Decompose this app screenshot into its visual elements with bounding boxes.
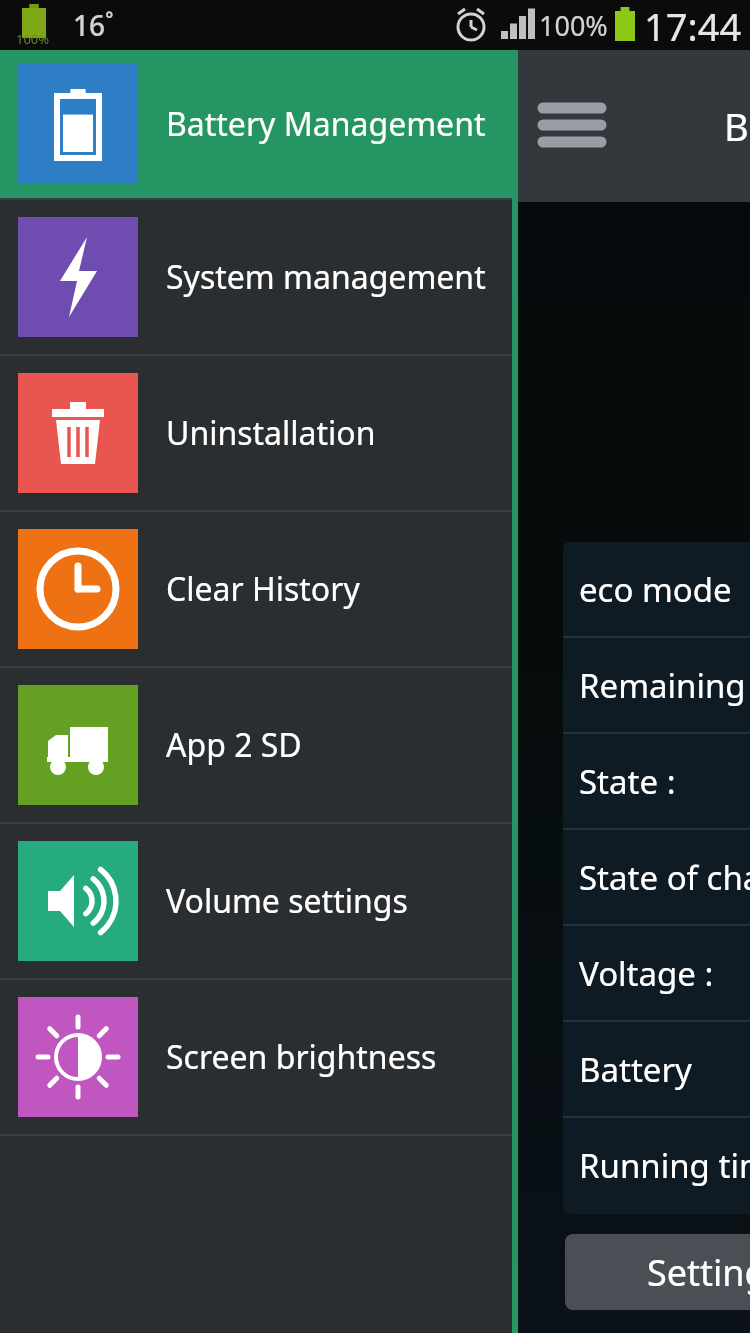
- staticText: State of charge :: [579, 855, 750, 900]
- staticText: Battery temperature :: [579, 1047, 750, 1092]
- staticText: eco mode: [579, 567, 732, 612]
- button[interactable]: Volume settings: [0, 824, 512, 978]
- button[interactable]: Clear History: [0, 512, 512, 666]
- staticText: State :: [579, 759, 676, 804]
- button[interactable]: State of charge :: [563, 830, 750, 924]
- staticText: 100%: [539, 7, 608, 44]
- staticText: Clear History: [166, 567, 360, 611]
- button[interactable]: Open navigation drawer: [536, 90, 608, 162]
- staticText: App 2 SD: [166, 723, 302, 767]
- button[interactable]: Settings: [565, 1234, 750, 1310]
- staticText: 100%: [16, 30, 50, 48]
- staticText: Running time :: [579, 1143, 750, 1188]
- button[interactable]: Voltage :: [563, 926, 750, 1020]
- button[interactable]: Uninstallation: [0, 356, 512, 510]
- button[interactable]: System management: [0, 200, 512, 354]
- button[interactable]: State :: [563, 734, 750, 828]
- button[interactable]: Screen brightness set...: [0, 980, 512, 1134]
- staticText: Uninstallation: [166, 411, 376, 455]
- staticText: Screen brightness set...: [166, 1035, 512, 1079]
- button[interactable]: Battery temperature :: [563, 1022, 750, 1116]
- staticText: Battery Management: [166, 102, 486, 146]
- button[interactable]: eco mode: [563, 542, 750, 636]
- staticText: System management: [166, 255, 486, 299]
- staticText: Settings: [647, 1248, 750, 1297]
- button[interactable]: Remaining battery :: [563, 638, 750, 732]
- button[interactable]: App 2 SD: [0, 668, 512, 822]
- staticText: Battery Management: [724, 100, 750, 152]
- staticText: Remaining battery :: [579, 663, 750, 708]
- button[interactable]: Running time :: [563, 1118, 750, 1212]
- staticText: 16˚: [73, 6, 114, 44]
- staticText: Voltage :: [579, 951, 714, 996]
- button[interactable]: Battery Management: [0, 50, 512, 198]
- staticText: 17:44: [644, 0, 742, 50]
- staticText: Volume settings: [166, 879, 408, 923]
